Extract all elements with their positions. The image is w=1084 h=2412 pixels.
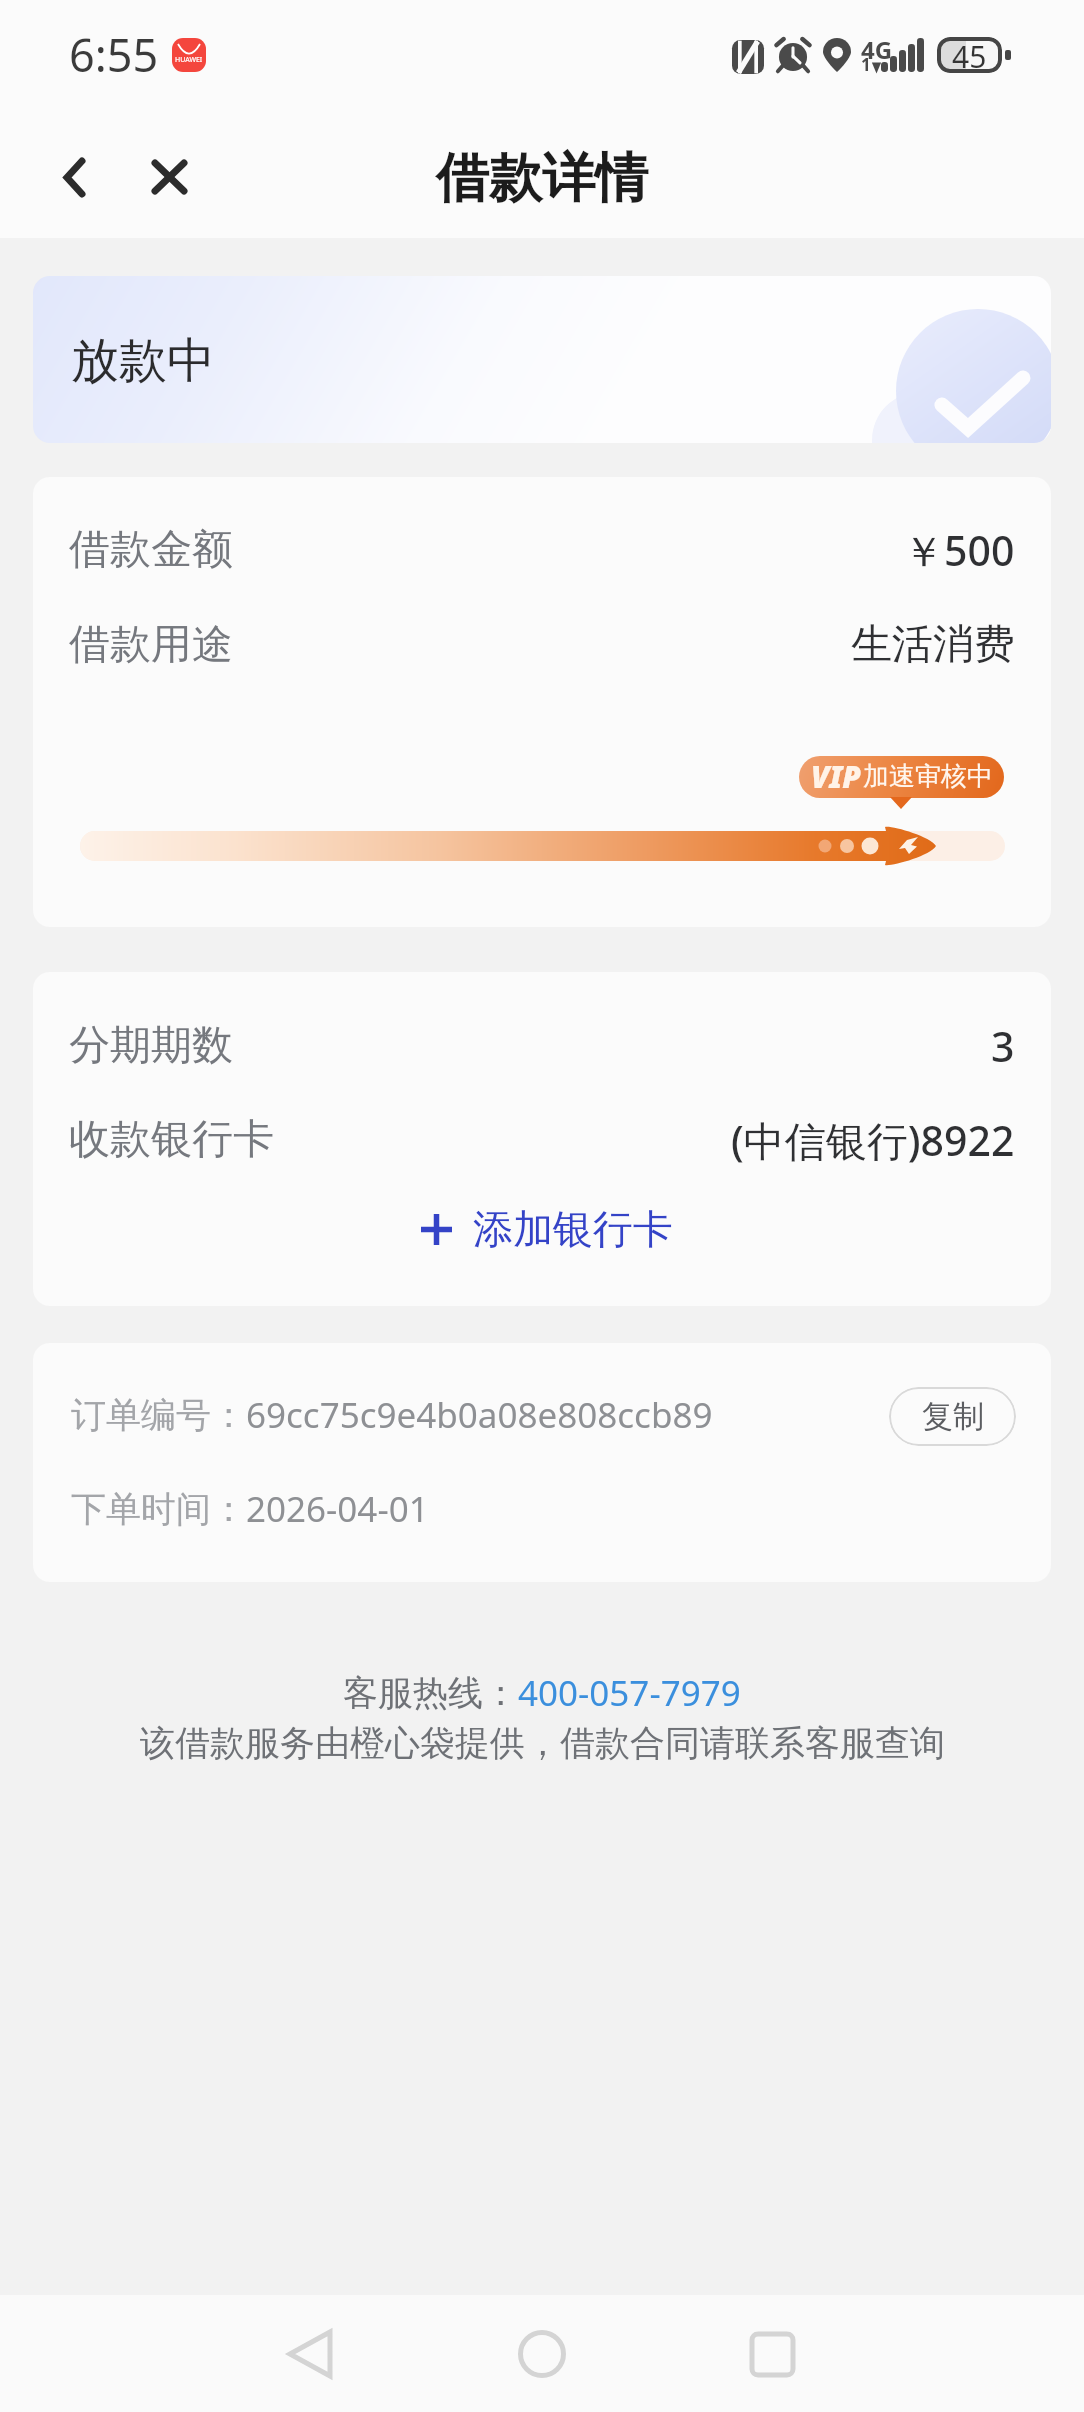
button[interactable]: 添加银行卡 [401,1196,693,1262]
staticText: 生活消费 [851,619,1015,671]
staticText: 6:55 [69,24,159,85]
button[interactable]: Close [123,131,215,223]
staticText: HUAWEI [175,55,203,65]
staticText: (中信银行)8922 [731,1112,1015,1168]
button[interactable]: 400-057-7979 [518,1669,741,1717]
staticText: 复制 [922,1397,984,1436]
staticText: 下单时间： [71,1487,246,1531]
button[interactable]: Home [482,2299,602,2409]
staticText: 添加银行卡 [473,1204,673,1254]
staticText: 2026-04-01 [246,1485,429,1533]
button[interactable]: Back [28,131,120,223]
staticText: 4G [861,33,893,66]
button[interactable]: 复制 [889,1387,1016,1446]
staticText: 分期期数 [69,1020,233,1072]
staticText: 该借款服务由橙心袋提供，借款合同请联系客服查询 [140,1721,945,1765]
staticText: 收款银行卡 [69,1114,274,1166]
staticText: 放款中 [71,331,215,391]
staticText: 45 [952,37,987,72]
staticText: ￥500 [903,522,1015,578]
button[interactable]: Recents [712,2299,832,2409]
staticText: 3 [991,1018,1015,1074]
staticText: VIP [811,756,861,797]
staticText: 加速审核中 [863,760,993,793]
staticText: 订单编号： [71,1393,246,1437]
staticText: 借款用途 [69,619,233,671]
staticText: 借款金额 [69,524,233,576]
staticText: 客服热线： [343,1671,518,1715]
button[interactable]: Back [250,2299,370,2409]
staticText: 1 [861,53,871,76]
staticText: 借款详情 [436,145,648,212]
staticText: 69cc75c9e4b0a08e808ccb89 [246,1391,713,1439]
